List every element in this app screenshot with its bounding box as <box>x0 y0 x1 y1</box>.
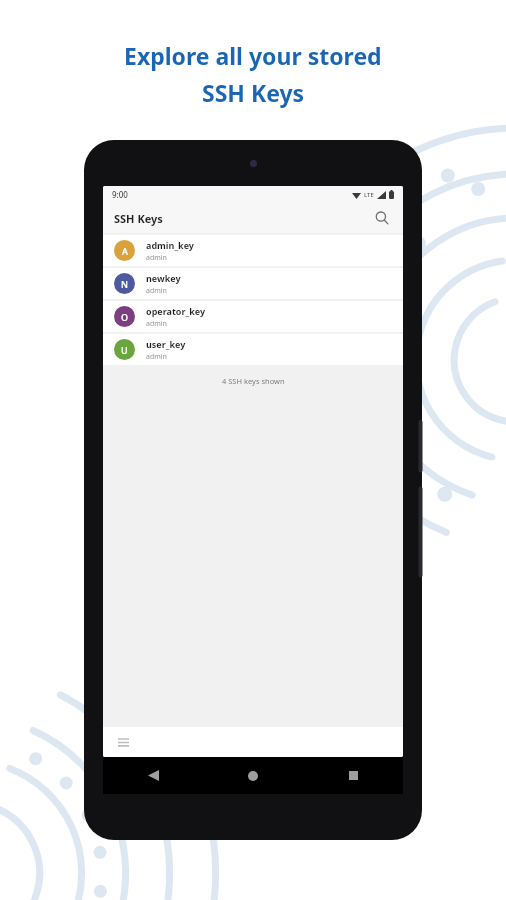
staticText: admin_key <box>146 239 195 251</box>
staticText: SSH Keys <box>202 77 305 108</box>
staticText: N <box>121 278 128 290</box>
staticText: O <box>121 311 129 323</box>
staticText: user_key <box>146 338 186 350</box>
staticText: admin <box>146 352 167 362</box>
button[interactable]: Home <box>203 757 303 794</box>
button[interactable]: A <box>103 235 403 266</box>
staticText: A <box>122 245 128 257</box>
staticText: admin <box>146 286 167 296</box>
staticText: SSH Keys <box>114 211 163 226</box>
staticText: admin <box>146 253 167 263</box>
staticText: newkey <box>146 272 181 284</box>
button[interactable]: U <box>103 334 403 365</box>
staticText: LTE <box>364 191 374 199</box>
button[interactable]: Back <box>103 757 203 794</box>
button[interactable]: Search <box>370 206 394 230</box>
button[interactable]: Recents <box>303 757 403 794</box>
staticText: U <box>121 344 128 356</box>
staticText: 4 SSH keys shown <box>222 376 285 386</box>
staticText: Explore all your stored <box>124 40 382 71</box>
staticText: operator_key <box>146 305 206 317</box>
button[interactable]: O <box>103 301 403 332</box>
staticText: admin <box>146 319 167 329</box>
button[interactable]: N <box>103 268 403 299</box>
button[interactable]: Menu <box>112 731 134 753</box>
staticText: 9:00 <box>112 189 128 200</box>
